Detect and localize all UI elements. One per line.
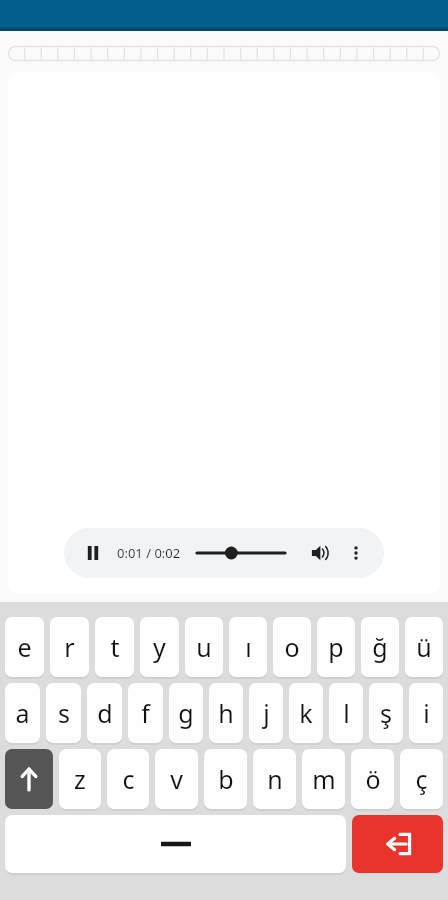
button[interactable]: o [273, 617, 311, 677]
staticText: y [153, 630, 166, 664]
button[interactable]: e [5, 617, 44, 677]
button[interactable]: Enter [352, 815, 443, 873]
staticText: n [267, 762, 283, 796]
staticText: ö [365, 762, 381, 796]
staticText: ü [416, 630, 432, 664]
staticText: o [284, 630, 300, 664]
button[interactable]: Shift [5, 749, 53, 809]
button[interactable]: Seek [197, 540, 285, 566]
button[interactable]: n [253, 749, 296, 809]
staticText: i [423, 696, 430, 730]
staticText: s [58, 696, 70, 730]
button[interactable]: ö [351, 749, 394, 809]
staticText: p [328, 630, 344, 664]
button[interactable]: More options [341, 538, 371, 568]
staticText: j [263, 696, 270, 730]
staticText: l [343, 696, 350, 730]
staticText: d [97, 696, 113, 730]
staticText: c [122, 762, 135, 796]
button[interactable]: t [95, 617, 134, 677]
staticText: e [17, 630, 32, 664]
button[interactable]: z [59, 749, 101, 809]
staticText: k [299, 696, 313, 730]
staticText: ı [245, 630, 252, 664]
button[interactable]: Pause [78, 538, 108, 568]
staticText: ğ [372, 630, 388, 664]
staticText: g [178, 696, 194, 730]
button[interactable]: y [140, 617, 179, 677]
button[interactable]: k [289, 683, 323, 743]
button[interactable]: ğ [361, 617, 399, 677]
button[interactable]: ç [400, 749, 443, 809]
button[interactable]: r [50, 617, 89, 677]
button[interactable]: a [5, 683, 40, 743]
staticText: m [312, 762, 336, 796]
button[interactable]: u [185, 617, 223, 677]
button[interactable]: j [249, 683, 283, 743]
button[interactable]: ş [369, 683, 403, 743]
button[interactable]: f [128, 683, 163, 743]
button[interactable]: ü [405, 617, 443, 677]
staticText: f [141, 696, 150, 730]
staticText: t [110, 630, 120, 664]
button[interactable]: p [317, 617, 355, 677]
staticText: ç [415, 762, 428, 796]
button[interactable]: l [329, 683, 363, 743]
staticText: v [170, 762, 183, 796]
button[interactable]: m [302, 749, 345, 809]
staticText: a [15, 696, 30, 730]
staticText: 0:01 / 0:02 [117, 544, 181, 562]
button[interactable]: s [46, 683, 81, 743]
button[interactable]: v [155, 749, 198, 809]
staticText: b [218, 762, 234, 796]
staticText: z [74, 762, 86, 796]
button[interactable]: Mute [305, 538, 335, 568]
button[interactable]: h [209, 683, 243, 743]
button[interactable]: Space [5, 815, 346, 873]
button[interactable]: c [107, 749, 149, 809]
button[interactable]: ı [229, 617, 267, 677]
button[interactable]: b [204, 749, 247, 809]
button[interactable]: g [169, 683, 203, 743]
button[interactable]: Segments [8, 46, 440, 61]
button[interactable]: d [87, 683, 122, 743]
staticText: r [64, 630, 75, 664]
staticText: ş [380, 696, 392, 730]
staticText: h [218, 696, 234, 730]
staticText: u [196, 630, 212, 664]
button[interactable]: i [409, 683, 443, 743]
